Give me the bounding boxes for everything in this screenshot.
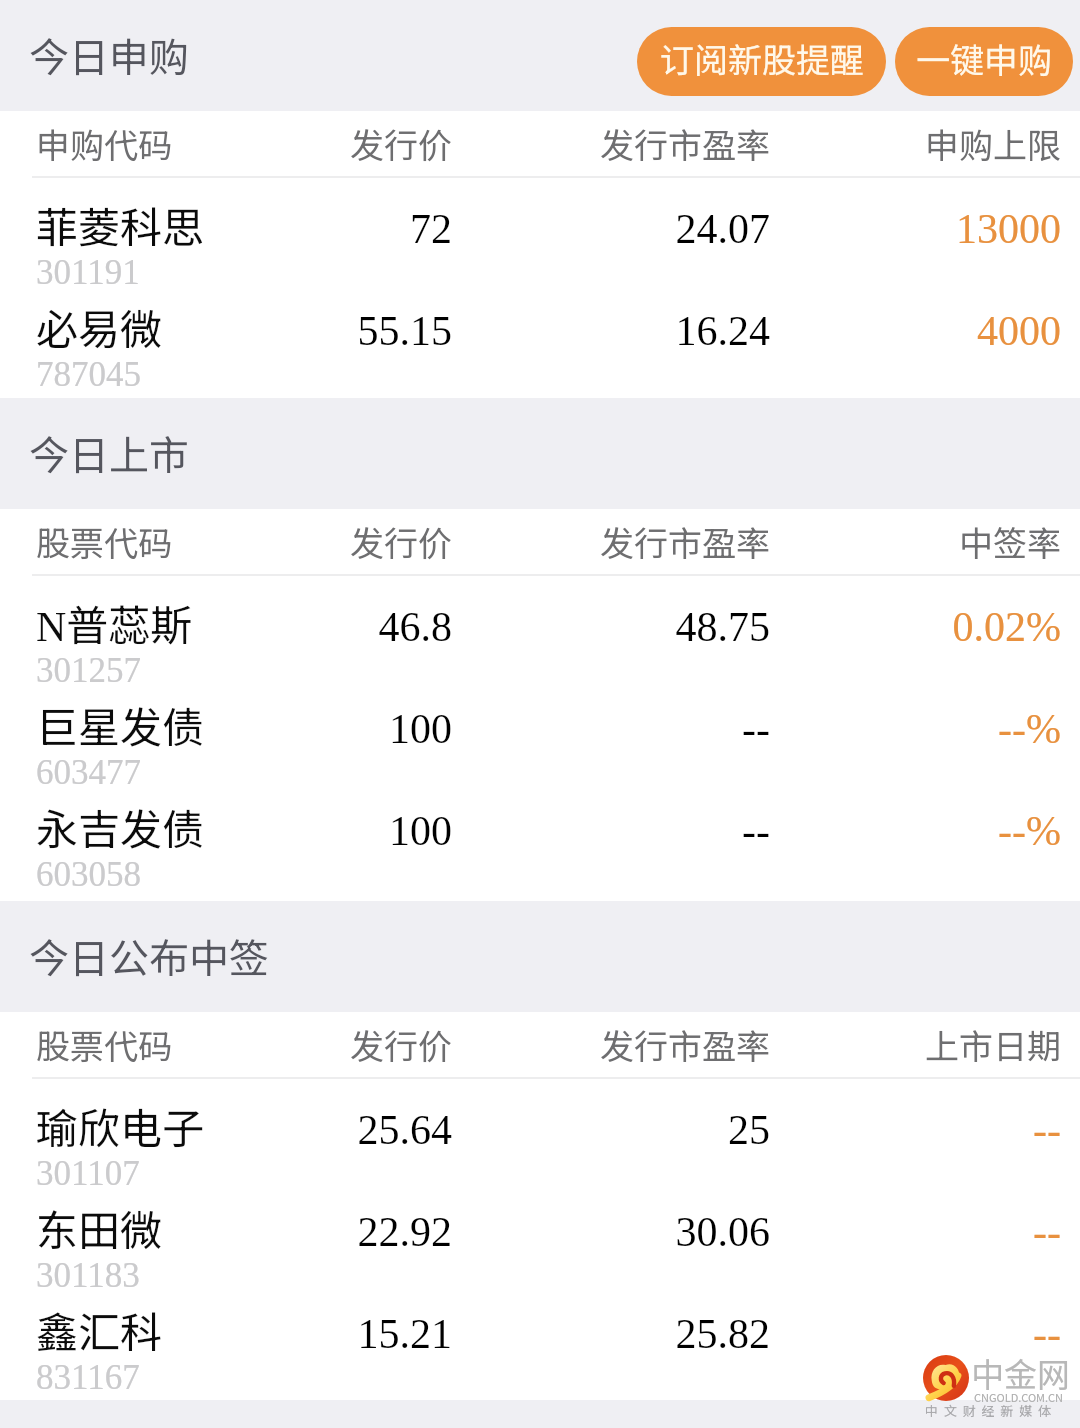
staticText: -- <box>0 808 770 855</box>
staticText: 申购代码 <box>36 119 172 168</box>
staticText: 今日公布中签 <box>29 927 269 985</box>
staticText: -- <box>0 706 770 753</box>
button[interactable]: 巨星发债 <box>0 676 1080 778</box>
staticText: 中 文 财 经 新 媒 体 <box>925 1401 1051 1420</box>
button[interactable]: 鑫汇科 <box>0 1281 1080 1383</box>
staticText: -- <box>0 1107 1061 1154</box>
staticText: 发行市盈率 <box>0 119 770 168</box>
staticText: 301107 <box>36 1154 140 1193</box>
staticText: 0.02% <box>0 604 1061 651</box>
staticText: 46.8 <box>0 604 452 651</box>
staticText: 必易微 <box>36 296 163 357</box>
staticText: 301183 <box>36 1256 140 1295</box>
staticText: 25.64 <box>0 1107 452 1154</box>
button[interactable]: 东田微 <box>0 1179 1080 1281</box>
staticText: 股票代码 <box>36 517 172 566</box>
staticText: 中金网 <box>971 1349 1070 1397</box>
staticText: --% <box>0 706 1061 753</box>
staticText: 股票代码 <box>36 1020 172 1069</box>
staticText: 4000 <box>0 308 1061 355</box>
staticText: -- <box>0 1311 1061 1358</box>
staticText: 13000 <box>0 206 1061 253</box>
staticText: 一键申购 <box>916 34 1052 83</box>
staticText: --% <box>0 808 1061 855</box>
staticText: N普蕊斯 <box>36 592 193 653</box>
button[interactable]: 永吉发债 <box>0 778 1080 880</box>
staticText: 今日上市 <box>29 424 189 482</box>
staticText: 今日申购 <box>29 26 189 84</box>
staticText: 申购上限 <box>0 119 1061 168</box>
staticText: 15.21 <box>0 1311 452 1358</box>
staticText: 25.82 <box>0 1311 770 1358</box>
staticText: 东田微 <box>36 1197 163 1258</box>
staticText: 鑫汇科 <box>36 1299 163 1360</box>
staticText: 发行价 <box>0 517 452 566</box>
staticText: 中签率 <box>0 517 1061 566</box>
staticText: 72 <box>0 206 452 253</box>
button[interactable]: N普蕊斯 <box>0 574 1080 676</box>
staticText: 瑜欣电子 <box>36 1095 205 1156</box>
button[interactable]: 瑜欣电子 <box>0 1077 1080 1179</box>
staticText: 发行价 <box>0 119 452 168</box>
staticText: -- <box>0 1209 1061 1256</box>
staticText: 菲菱科思 <box>36 194 205 255</box>
staticText: 24.07 <box>0 206 770 253</box>
staticText: 发行市盈率 <box>0 1020 770 1069</box>
staticText: 永吉发债 <box>36 796 205 857</box>
staticText: 787045 <box>36 355 141 394</box>
staticText: 发行市盈率 <box>0 517 770 566</box>
staticText: 25 <box>0 1107 770 1154</box>
staticText: CNGOLD.COM.CN <box>974 1389 1064 1405</box>
staticText: 603058 <box>36 855 141 894</box>
staticText: 22.92 <box>0 1209 452 1256</box>
staticText: 100 <box>0 808 452 855</box>
staticText: 巨星发债 <box>36 694 205 755</box>
other: 中金网 logo <box>923 1355 969 1401</box>
staticText: 48.75 <box>0 604 770 651</box>
staticText: 30.06 <box>0 1209 770 1256</box>
staticText: 发行价 <box>0 1020 452 1069</box>
staticText: 301191 <box>36 253 140 292</box>
staticText: 301257 <box>36 651 141 690</box>
staticText: 16.24 <box>0 308 770 355</box>
button[interactable]: 必易微 <box>0 278 1080 380</box>
staticText: 上市日期 <box>0 1020 1061 1069</box>
staticText: 831167 <box>36 1358 140 1397</box>
staticText: 100 <box>0 706 452 753</box>
button[interactable]: 订阅新股提醒 <box>637 27 886 96</box>
button[interactable]: 菲菱科思 <box>0 176 1080 278</box>
staticText: 603477 <box>36 753 141 792</box>
staticText: 55.15 <box>0 308 452 355</box>
button[interactable]: 一键申购 <box>895 27 1073 96</box>
staticText: 订阅新股提醒 <box>660 34 864 83</box>
